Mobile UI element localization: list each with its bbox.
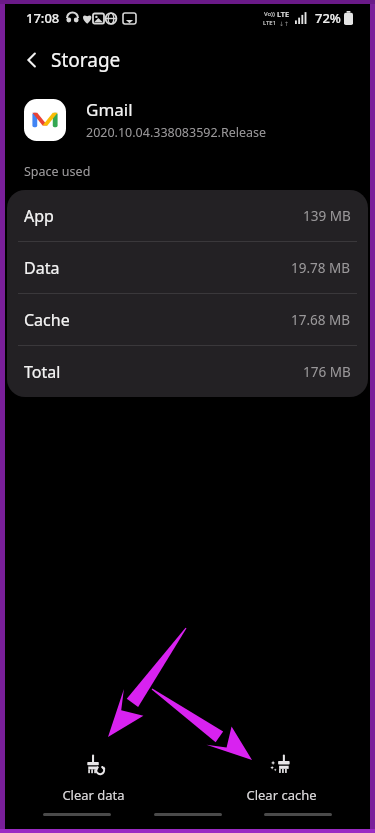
button[interactable]: Total xyxy=(7,346,368,397)
staticText: Clear data xyxy=(62,786,125,804)
staticText: 19.78 MB xyxy=(291,259,351,277)
button[interactable]: Clear data xyxy=(0,745,187,813)
staticText: 176 MB xyxy=(303,363,351,381)
staticText: App xyxy=(24,205,54,227)
button[interactable]: Cache xyxy=(7,294,368,345)
staticText: 72% xyxy=(315,9,341,27)
staticText: Total xyxy=(24,361,61,383)
staticText: Cache xyxy=(24,309,70,331)
staticText: 17:08 xyxy=(26,9,60,27)
button[interactable]: Data xyxy=(7,242,368,293)
staticText: LTE xyxy=(277,9,290,19)
staticText: Gmail xyxy=(86,98,133,121)
staticText: 2020.10.04.338083592.Release xyxy=(86,124,267,141)
staticText: 17.68 MB xyxy=(291,311,351,329)
staticText: Space used xyxy=(24,163,91,180)
staticText: 139 MB xyxy=(303,207,351,225)
staticText: ↓↑ xyxy=(279,20,290,27)
staticText: Data xyxy=(24,257,60,279)
button[interactable]: App xyxy=(7,190,368,241)
staticText: Storage xyxy=(51,47,121,73)
staticText: Clear cache xyxy=(246,786,317,804)
staticText: LTE1 xyxy=(263,19,277,27)
staticText: Vo)) xyxy=(264,10,275,18)
button[interactable]: Clear cache xyxy=(187,745,375,813)
button[interactable]: Back xyxy=(12,40,52,80)
